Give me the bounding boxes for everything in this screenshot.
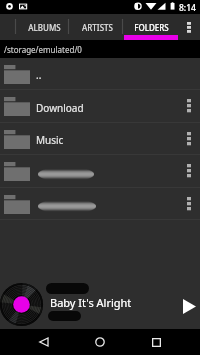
staticText: 8:14 — [179, 2, 196, 14]
button[interactable]: Item options — [0, 188, 200, 220]
staticText: Download — [36, 101, 84, 115]
button[interactable]: Item options — [0, 155, 200, 188]
staticText: Music — [36, 133, 64, 147]
staticText: .. — [36, 68, 42, 82]
staticText: FOLDERS — [134, 22, 169, 33]
button[interactable]: Home — [86, 329, 114, 355]
staticText: /storage/emulated/0 — [4, 44, 82, 55]
button[interactable]: ARTISTS — [70, 14, 124, 40]
staticText: ALBUMS — [28, 22, 61, 33]
button[interactable]: Item options — [178, 90, 200, 123]
button[interactable]: More options — [180, 19, 198, 36]
button[interactable]: FOLDERS — [124, 14, 178, 40]
button[interactable]: Play — [175, 292, 200, 321]
button[interactable]: Item options — [178, 123, 200, 155]
button[interactable]: ALBUMS — [17, 14, 71, 40]
button[interactable]: Item options — [178, 188, 200, 220]
button[interactable]: .. — [0, 58, 200, 90]
button[interactable]: Recents — [142, 329, 170, 355]
button[interactable]: Back — [30, 329, 58, 355]
button[interactable]: Download — [0, 90, 200, 123]
button[interactable]: Item options — [178, 155, 200, 188]
button[interactable]: Music — [0, 123, 200, 155]
staticText: ARTISTS — [82, 22, 113, 33]
staticText: Baby It's Alright — [50, 295, 132, 310]
